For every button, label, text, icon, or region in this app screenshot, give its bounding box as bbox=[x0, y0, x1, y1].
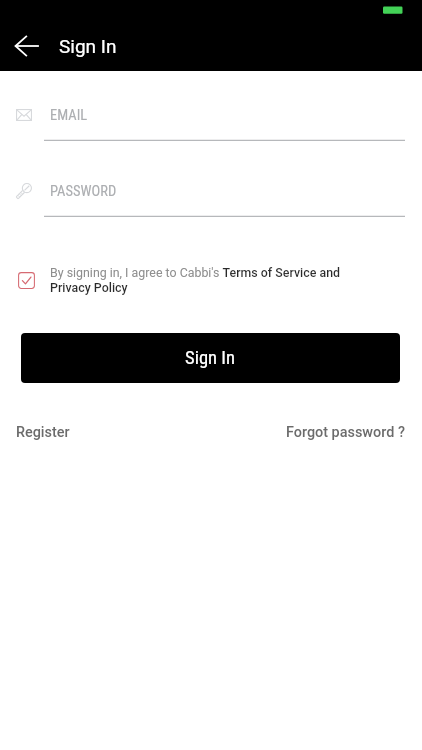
button[interactable]: By signing in, I agree to Cabbi's Terms … bbox=[50, 265, 350, 295]
staticText: Sign In bbox=[59, 35, 117, 57]
staticText: Sign In bbox=[185, 347, 236, 369]
button[interactable]: Agree to terms bbox=[18, 272, 35, 289]
button[interactable]: Back bbox=[2, 26, 50, 66]
staticText: EMAIL bbox=[50, 107, 88, 124]
button[interactable]: Register bbox=[16, 424, 70, 441]
staticText: PASSWORD bbox=[50, 183, 117, 200]
button[interactable]: Sign In bbox=[21, 333, 400, 383]
staticText: Register bbox=[16, 424, 70, 441]
staticText: By signing in, I agree to Cabbi's Terms … bbox=[50, 265, 350, 295]
staticText: Forgot password ? bbox=[286, 424, 405, 441]
button[interactable]: Forgot password ? bbox=[286, 424, 405, 441]
